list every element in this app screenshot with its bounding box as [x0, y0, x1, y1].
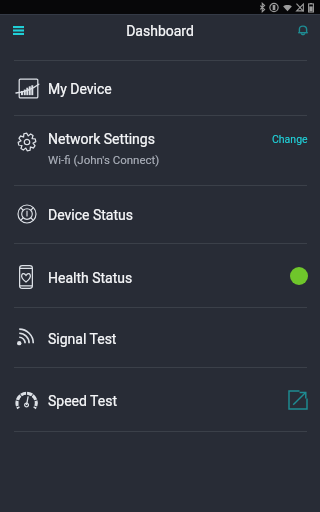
staticText: Dashboard — [126, 23, 194, 39]
button[interactable]: Change — [269, 130, 308, 148]
button[interactable]: Notifications — [290, 18, 316, 44]
button[interactable]: Signal Test — [0, 308, 320, 367]
staticText: Device Status — [48, 207, 133, 223]
staticText: Wi-fi (John's Connect) — [48, 153, 160, 166]
button[interactable]: My Device — [0, 61, 320, 115]
button[interactable]: Device Status — [0, 186, 320, 243]
button[interactable]: Health Status — [0, 244, 320, 307]
staticText: Health Status — [48, 270, 133, 286]
button[interactable]: Open speed test — [288, 390, 308, 410]
staticText: My Device — [48, 81, 112, 97]
staticText: Speed Test — [48, 393, 118, 409]
staticText: Network Settings — [48, 131, 155, 147]
staticText: Change — [272, 133, 308, 145]
staticText: Signal Test — [48, 331, 117, 347]
button[interactable]: Speed Test — [0, 368, 320, 431]
button[interactable]: Network Settings — [0, 116, 320, 185]
button[interactable]: Menu — [5, 17, 32, 44]
